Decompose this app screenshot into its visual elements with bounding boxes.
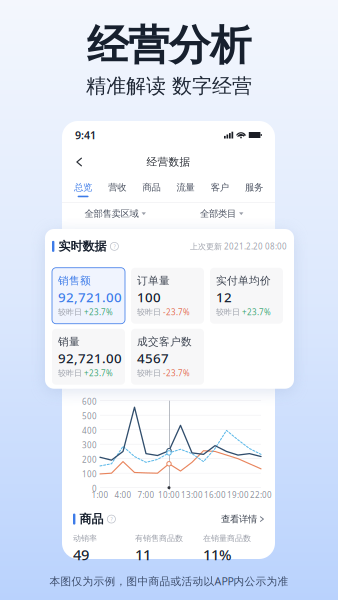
staticText: 商品 xyxy=(142,182,160,193)
staticText: 4567 xyxy=(137,349,169,367)
staticText: 本图仅为示例，图中商品或活动以APP内公示为准 xyxy=(49,574,288,588)
staticText: 1:00 xyxy=(91,490,108,500)
staticText: 实时数据 xyxy=(58,239,106,254)
staticText: 92,721.00 xyxy=(58,349,122,367)
staticText: 500 xyxy=(82,411,97,421)
staticText: 流量 xyxy=(177,182,195,193)
staticText: 22:00 xyxy=(250,490,272,500)
staticText: 12 xyxy=(216,288,232,306)
staticText: 动销率 xyxy=(73,533,97,543)
staticText: 600 xyxy=(82,396,97,407)
button[interactable]: 销量 xyxy=(52,329,125,385)
button[interactable]: 客户 xyxy=(203,182,237,197)
staticText: 13:00 xyxy=(181,490,203,500)
staticText: 11 xyxy=(135,545,151,564)
staticText: 精准解读 数字经营 xyxy=(86,74,252,98)
staticText: 订单量 xyxy=(137,274,170,287)
staticText: 经营分析 xyxy=(87,20,251,71)
button[interactable]: Back xyxy=(70,153,88,171)
staticText: -23.7% xyxy=(163,307,190,317)
staticText: 在销量商品数 xyxy=(203,533,251,543)
staticText: 49 xyxy=(73,545,89,564)
staticText: 200 xyxy=(82,454,97,465)
staticText: +23.7% xyxy=(242,307,271,317)
staticText: 较昨日 xyxy=(58,307,82,317)
button[interactable]: 成交客户数 xyxy=(131,329,204,385)
staticText: 查看详情 xyxy=(221,513,257,525)
staticText: 实付单均价 xyxy=(216,274,271,287)
staticText: 4:00 xyxy=(114,490,131,500)
button[interactable]: 流量 xyxy=(168,182,203,197)
staticText: 销量 xyxy=(58,335,80,348)
staticText: 较昨日 xyxy=(216,307,240,317)
staticText: 营收 xyxy=(108,182,126,193)
button[interactable]: 查看详情 xyxy=(221,513,264,525)
staticText: 较昨日 xyxy=(137,307,161,317)
staticText: +23.7% xyxy=(84,307,113,317)
button[interactable]: 订单量 xyxy=(131,268,204,324)
staticText: 全部类目 xyxy=(200,208,236,219)
staticText: 9:41 xyxy=(75,128,96,142)
staticText: 经营数据 xyxy=(146,155,190,168)
staticText: ? xyxy=(113,243,115,250)
staticText: 16:00 xyxy=(204,490,226,500)
staticText: 100 xyxy=(137,288,161,306)
staticText: 销售额 xyxy=(58,274,91,287)
staticText: 19:00 xyxy=(227,490,249,500)
staticText: 7:00 xyxy=(137,490,154,500)
staticText: 300 xyxy=(82,440,97,450)
staticText: 客户 xyxy=(211,182,229,193)
staticText: 上次更新 2021.2.20 08:00 xyxy=(190,241,287,252)
staticText: 0 xyxy=(92,483,97,494)
button[interactable]: 实付单均价 xyxy=(210,268,283,324)
staticText: 全部售卖区域 xyxy=(84,208,138,219)
button[interactable]: 总览 xyxy=(66,182,100,197)
staticText: 总览 xyxy=(74,182,92,193)
button[interactable]: 全部售卖区域 xyxy=(62,208,168,219)
button[interactable]: 销售额 xyxy=(52,268,125,324)
staticText: 服务 xyxy=(245,182,263,193)
staticText: ? xyxy=(110,515,112,523)
staticText: 成交客户数 xyxy=(137,335,192,348)
button[interactable]: 全部类目 xyxy=(168,208,275,219)
staticText: -23.7% xyxy=(163,368,190,378)
staticText: 100 xyxy=(82,469,97,479)
button[interactable]: 营收 xyxy=(100,182,134,197)
staticText: +23.7% xyxy=(84,368,113,378)
staticText: 400 xyxy=(82,425,97,436)
staticText: 10:00 xyxy=(158,490,180,500)
button[interactable]: 服务 xyxy=(237,182,271,197)
button[interactable]: 商品 xyxy=(134,182,168,197)
staticText: 有销售商品数 xyxy=(135,533,183,543)
staticText: 11% xyxy=(203,545,231,564)
staticText: 商品 xyxy=(79,512,103,526)
staticText: 92,721.00 xyxy=(58,288,122,306)
staticText: 较昨日 xyxy=(137,368,161,378)
staticText: 较昨日 xyxy=(58,368,82,378)
